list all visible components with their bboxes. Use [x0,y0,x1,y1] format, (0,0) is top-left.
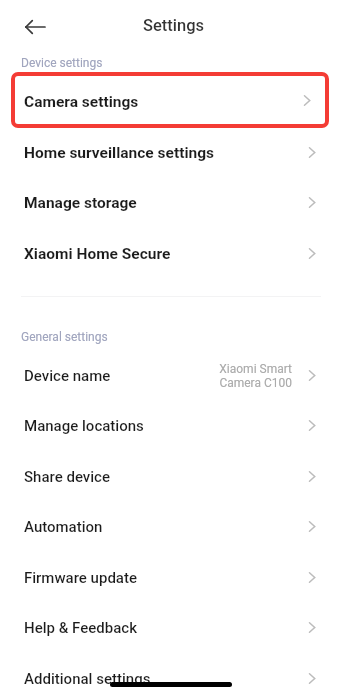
staticText: Camera settings [24,93,139,111]
button[interactable]: Automation [0,501,342,552]
staticText: Device settings [21,56,103,70]
staticText: Additional settings [24,670,151,688]
button[interactable]: Manage locations [0,400,342,451]
staticText: Device name [24,367,111,385]
staticText: Home surveillance settings [24,144,215,162]
button[interactable]: Additional settings [0,653,342,692]
staticText: Share device [24,468,111,486]
staticText: Manage locations [24,417,144,435]
button[interactable]: Share device [0,451,342,502]
button[interactable]: Manage storage [0,177,342,228]
button[interactable]: Help & Feedback [0,602,342,653]
staticText: Xiaomi Home Secure [24,245,171,263]
button[interactable]: Home surveillance settings [0,127,342,178]
staticText: Automation [24,518,103,536]
button[interactable]: Device name [0,350,342,401]
button[interactable]: Xiaomi Home Secure [0,228,342,279]
staticText: Manage storage [24,194,137,212]
button[interactable]: Firmware update [0,552,342,603]
staticText: Firmware update [24,569,138,587]
staticText: General settings [21,330,108,344]
staticText: Help & Feedback [24,619,137,637]
button[interactable]: Back [13,5,57,49]
button[interactable]: Camera settings [11,72,329,128]
staticText: Xiaomi Smart Camera C100 [219,362,292,390]
staticText: Settings [143,16,205,35]
